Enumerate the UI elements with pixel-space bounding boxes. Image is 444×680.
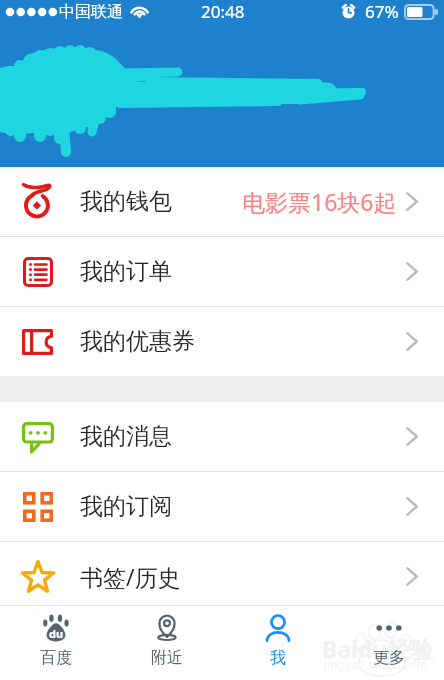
button[interactable]: 书签/历史 — [0, 542, 444, 611]
staticText: 20:48 — [201, 0, 245, 23]
staticText: 更多 — [373, 648, 405, 668]
staticText: 我的消息 — [80, 422, 172, 451]
staticText: 中国联通 — [59, 2, 123, 22]
staticText: 书签/历史 — [80, 561, 181, 592]
button[interactable]: 我 — [222, 606, 333, 680]
staticText: 67% — [365, 0, 399, 23]
button[interactable]: 我的订阅 — [0, 472, 444, 541]
button[interactable]: 我的订单 — [0, 237, 444, 306]
staticText: 百度 — [40, 648, 72, 668]
staticText: 我的钱包 — [80, 187, 172, 216]
button[interactable]: 我的优惠券 — [0, 307, 444, 376]
staticText: Baidu经验 — [322, 633, 434, 664]
button[interactable]: 更多 — [333, 606, 444, 680]
button[interactable]: 我的钱包 — [0, 167, 444, 236]
staticText: 我 — [270, 648, 286, 668]
staticText: 附近 — [151, 648, 183, 668]
staticText: 我的订单 — [80, 257, 172, 286]
staticText: 我的优惠券 — [80, 327, 195, 356]
staticText: 我的订阅 — [80, 492, 172, 521]
staticText: jingyan.baidu.com — [324, 656, 428, 672]
button[interactable]: 附近 — [111, 606, 222, 680]
staticText: du — [49, 626, 64, 641]
staticText: 电影票16块6起 — [242, 186, 397, 217]
button[interactable]: 我的消息 — [0, 402, 444, 471]
button[interactable]: du — [0, 606, 111, 680]
